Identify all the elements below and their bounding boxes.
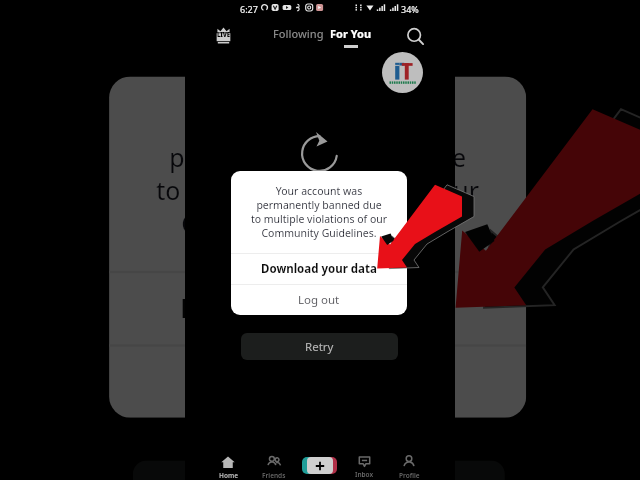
staticText: 6:27 (240, 3, 258, 15)
staticText: Retry (284, 475, 353, 480)
button[interactable]: Download your data (109, 273, 526, 344)
button[interactable]: Log out (109, 347, 526, 418)
staticText: Inbox (355, 470, 374, 479)
button[interactable]: Live (212, 24, 234, 46)
button[interactable]: Log out (231, 285, 407, 315)
staticText: Home (219, 471, 238, 480)
button[interactable]: Friends (251, 447, 297, 480)
button[interactable]: For You (326, 23, 376, 51)
staticText: Download your data (261, 261, 377, 277)
staticText: 34% (401, 3, 419, 15)
staticText: Retry (305, 339, 334, 355)
button[interactable]: Following (269, 23, 328, 44)
staticText: Following (273, 26, 324, 41)
staticText: Your account was permanently banned due … (109, 107, 526, 240)
button[interactable]: Channel logo (382, 52, 423, 93)
button[interactable]: Create (296, 453, 342, 478)
button[interactable]: Retry (133, 460, 505, 480)
staticText: Download your data (180, 290, 455, 328)
button[interactable]: Home (205, 447, 251, 480)
button[interactable]: Download your data (231, 254, 407, 284)
button[interactable]: Search (403, 24, 427, 48)
button[interactable]: Profile (386, 447, 432, 480)
button[interactable]: Retry (241, 333, 398, 360)
staticText: Profile (399, 471, 420, 480)
staticText: For You (330, 26, 372, 41)
staticText: Friends (262, 471, 286, 480)
staticText: LIVE (217, 31, 230, 39)
staticText: Your account was permanently banned due … (231, 184, 407, 240)
staticText: Log out (298, 292, 340, 308)
button[interactable]: Inbox (341, 447, 387, 479)
